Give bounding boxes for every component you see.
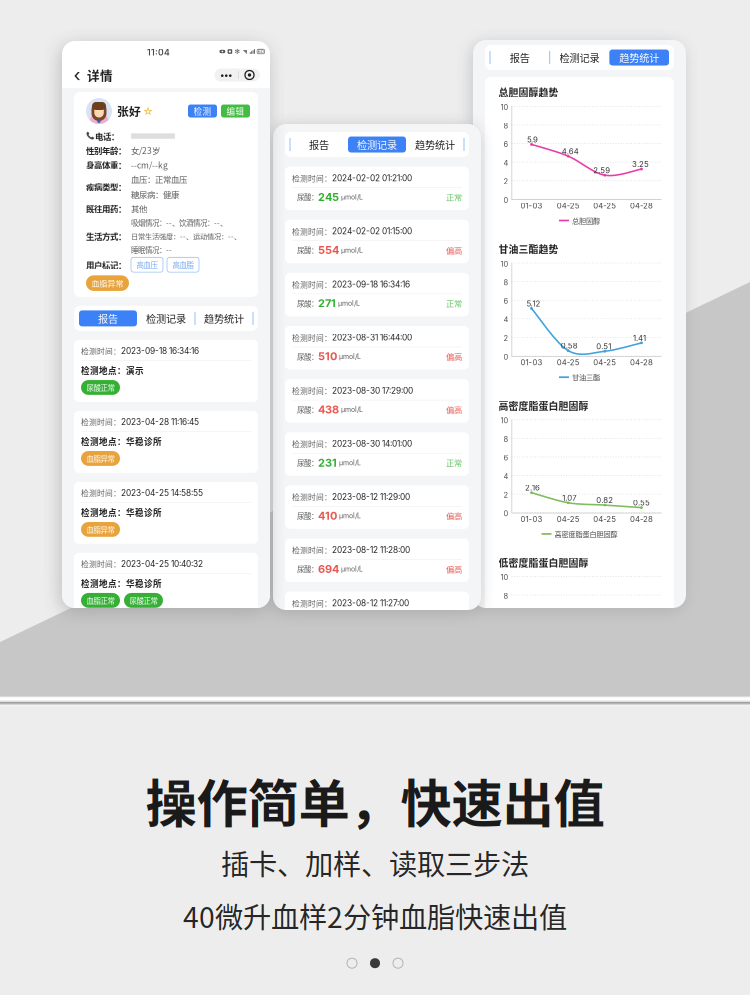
staticText: 2023-04-28 11:16:45 [121,417,199,427]
button[interactable]: 报告 [290,136,348,152]
staticText: 04-28 [630,358,653,367]
staticText: 检测地点： [81,577,126,589]
staticText: 华稳诊所 [126,435,162,448]
button[interactable]: 检测记录 [348,136,406,152]
staticText: 尿酸： [297,298,318,309]
staticText: 检测记录 [146,311,186,326]
staticText: 血脂异常 [91,277,123,289]
staticText: 04-25 [593,514,616,524]
button[interactable]: 检测时间： [285,485,469,529]
staticText: μmol/L [337,458,361,467]
staticText: 10 [500,259,508,268]
button[interactable]: 检测时间： [74,482,258,544]
staticText: 0 [503,352,508,361]
staticText: 2023-08-30 14:01:00 [332,439,412,449]
button[interactable]: 检测时间： [285,538,469,582]
staticText: 尿酸： [297,245,318,255]
staticText: 0.51 [596,342,611,351]
staticText: 尿酸正常 [129,595,157,606]
staticText: 04-25 [593,358,616,367]
staticText: 编辑 [226,105,244,117]
button[interactable]: 趋势统计 [406,136,464,152]
button[interactable]: 报告 [79,310,137,326]
staticText: 尿酸： [297,404,318,415]
staticText: 0 [503,509,508,518]
button[interactable]: 趋势统计 [609,49,669,65]
staticText: μmol/L [337,352,361,361]
staticText: 报告 [98,311,118,326]
staticText: 趋势统计 [619,50,659,65]
staticText: 2.59 [593,166,610,175]
staticText: 生活方式： [86,230,126,242]
staticText: 检测时间： [292,491,332,503]
staticText: 报告 [510,50,530,65]
staticText: 检测地点： [81,364,126,377]
button[interactable]: 编辑 [221,104,250,117]
staticText: ◥ [243,48,248,55]
button[interactable]: 趋势统计 [195,310,253,326]
button[interactable]: 检测时间： [285,432,469,476]
button[interactable]: 检测时间： [285,273,469,316]
staticText: 检测时间： [292,598,332,609]
staticText: 偏高 [446,563,462,575]
button[interactable]: 报告 [490,49,550,65]
staticText: 尿酸： [297,351,318,362]
staticText: 8 [503,591,508,600]
staticText: 插卡、加样、读取三步法 [221,842,529,883]
staticText: 2023-04-25 14:58:55 [121,488,203,498]
button[interactable]: 检测时间： [74,340,258,402]
staticText: 6 [503,140,508,149]
staticText: 检测时间： [292,279,332,290]
staticText: 📞 [86,132,95,140]
staticText: 4 [503,315,508,324]
button[interactable]: 检测时间： [285,220,469,263]
button[interactable]: 检测时间： [285,379,469,423]
staticText: 检测地点： [81,506,126,518]
staticText: 高密度脂蛋白胆固醇 [554,529,617,539]
staticText: 偏高 [446,510,462,522]
staticText: 5.9 [527,135,538,144]
staticText: 438 [318,403,339,416]
staticText: 04-25 [557,358,580,367]
button[interactable]: 检测时间： [74,553,258,615]
staticText: μmol/L [337,512,361,520]
staticText: 张好 [117,102,141,119]
staticText: 检测时间： [81,416,121,428]
staticText: 04-28 [630,201,653,210]
staticText: 高血脂 [172,259,193,270]
staticText: 华稳诊所 [126,577,162,589]
staticText: 0 [503,196,508,205]
staticText: ‹ [73,64,80,86]
staticText: 睡眠情况：-- [131,244,172,255]
button[interactable]: 返回 [69,64,85,86]
staticText: 1.41 [633,333,646,343]
staticText: 0.55 [633,498,650,507]
button[interactable]: 检测时间： [285,592,469,619]
button[interactable]: 检测 [188,104,217,117]
button[interactable]: 检测时间： [285,167,469,210]
button[interactable]: 关闭 [239,68,260,81]
button[interactable]: 检测记录 [550,49,609,65]
staticText: 性别年龄： [86,144,126,157]
staticText: 总胆固醇趋势 [498,85,558,99]
staticText: 60 [258,49,264,54]
button[interactable]: 检测记录 [137,310,195,326]
button[interactable]: 检测时间： [74,411,258,473]
staticText: --cm/--kg [131,159,168,171]
staticText: 8 [503,278,508,287]
staticText: 操作简单，快速出值 [145,763,604,837]
staticText: 6 [503,297,508,306]
staticText: 410 [318,509,337,522]
staticText: 检测时间： [292,385,332,396]
staticText: 偏高 [446,350,462,362]
staticText: 10 [500,573,508,582]
staticText: 尿酸： [297,563,318,574]
button[interactable]: 检测时间： [285,326,469,369]
staticText: 正常 [446,457,462,469]
staticText: 检测地点： [81,435,126,448]
staticText: 甘油三酯 [572,372,600,382]
staticText: ☆ [142,104,153,117]
staticText: 疾病类型： [86,181,126,193]
button[interactable]: 更多 [214,68,238,81]
staticText: 3.25 [632,160,649,169]
